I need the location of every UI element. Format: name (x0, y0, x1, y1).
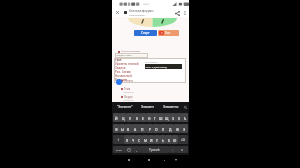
staticText: Форум колледжа (121, 50, 140, 53)
button[interactable]: П (139, 124, 146, 133)
staticText: С (138, 138, 141, 142)
button[interactable]: Emoji (125, 146, 133, 153)
button[interactable]: Ю (172, 135, 178, 144)
staticText: Ы (121, 127, 124, 131)
staticText: Форум (124, 95, 133, 99)
button[interactable]: Search (182, 102, 188, 112)
button[interactable]: С (136, 135, 142, 144)
staticText: П (141, 127, 144, 131)
button[interactable]: Э (181, 124, 188, 133)
staticText: Предмет мира (115, 54, 132, 57)
button[interactable]: Элементы (159, 102, 182, 112)
button[interactable]: К (134, 113, 140, 122)
staticText: У (129, 116, 132, 120)
button[interactable]: Тест: 5 дней назад (145, 64, 182, 69)
staticText: В (127, 127, 130, 131)
button[interactable]: Я (124, 135, 130, 144)
button[interactable]: More options (181, 9, 188, 16)
button[interactable]: Ж (174, 124, 181, 133)
staticText: О (155, 127, 158, 131)
button[interactable]: Backspace (178, 135, 188, 144)
staticText: Уран (115, 58, 122, 62)
button[interactable]: Enter (176, 146, 188, 153)
staticText: М (144, 138, 147, 142)
staticText: сообщений (123, 99, 134, 102)
staticText: Л (162, 127, 165, 131)
button[interactable]: Элемент (136, 102, 159, 112)
staticText: Т (156, 138, 158, 142)
button[interactable]: Тест (158, 30, 179, 36)
staticText: Е (142, 116, 144, 120)
button[interactable]: Т (154, 135, 160, 144)
button[interactable]: Предмет мира (115, 53, 148, 58)
button[interactable]: Home (146, 157, 152, 163)
button[interactable]: У (127, 113, 134, 122)
staticText: А (134, 127, 137, 131)
button[interactable]: А (132, 124, 139, 133)
staticText: ?123 (116, 148, 122, 151)
staticText: Тема (124, 87, 131, 91)
staticText: Ь (162, 138, 165, 142)
button[interactable]: Й (113, 113, 120, 122)
button[interactable]: Д (167, 124, 174, 133)
button[interactable]: Shift (113, 135, 124, 144)
button[interactable]: Share (173, 9, 181, 17)
staticText: ⌫ (181, 138, 186, 141)
button[interactable]: Symbols (113, 146, 125, 153)
staticText: Начальный (115, 74, 132, 78)
button[interactable]: Space (140, 146, 169, 153)
staticText: . (172, 148, 173, 152)
button[interactable]: Н (146, 113, 152, 122)
staticText: Уровень знаний (115, 62, 139, 66)
staticText: Ю (173, 138, 177, 142)
button[interactable]: Р (146, 124, 153, 133)
button[interactable]: Ф (113, 124, 119, 133)
staticText: З (172, 116, 174, 120)
staticText: Р (149, 127, 151, 131)
button[interactable]: З (170, 113, 176, 122)
button[interactable]: Л (160, 124, 167, 133)
staticText: Задача (115, 66, 126, 70)
staticText: ⇧ (117, 138, 120, 142)
button[interactable]: Close (114, 9, 121, 16)
button[interactable]: Ц (120, 113, 127, 122)
button[interactable]: "Элемент" (113, 102, 136, 112)
button[interactable]: Щ (164, 113, 170, 122)
button[interactable]: Switch keyboard (173, 157, 179, 163)
button[interactable]: Ь (160, 135, 166, 144)
staticText: Ш (159, 116, 163, 120)
staticText: Элементы (163, 105, 179, 109)
button[interactable]: Г (152, 113, 158, 122)
staticText: , (136, 148, 137, 152)
button[interactable]: И (148, 135, 154, 144)
staticText: Й (115, 116, 118, 120)
button[interactable]: М (142, 135, 148, 144)
button[interactable]: Старт (134, 30, 157, 36)
button[interactable]: Period (169, 146, 176, 153)
staticText: тест вариант (145, 61, 158, 64)
staticText: Рис. Схема (115, 70, 131, 74)
button[interactable]: О (153, 124, 160, 133)
staticText: Б (168, 138, 171, 142)
staticText: И (150, 138, 153, 142)
button[interactable]: Ч (130, 135, 136, 144)
button[interactable]: Ш (158, 113, 164, 122)
staticText: Старт (141, 31, 150, 35)
staticText: Г (154, 116, 156, 120)
staticText: "Элемент" (117, 105, 133, 109)
staticText: Ответы (124, 79, 134, 83)
staticText: Э (183, 127, 186, 131)
button[interactable]: Recents (126, 157, 132, 163)
button[interactable]: Х (176, 113, 182, 122)
button[interactable]: Е (140, 113, 146, 122)
staticText: Н (148, 116, 151, 120)
staticText: Ф (115, 127, 118, 131)
button[interactable]: Ъ (182, 113, 188, 122)
button[interactable]: В (125, 124, 132, 133)
button[interactable]: Comma (133, 146, 140, 153)
staticText: Тест: 5 дней назад (145, 65, 167, 68)
button[interactable]: Back (161, 157, 167, 163)
button[interactable]: Ы (119, 124, 125, 133)
button[interactable]: Б (166, 135, 172, 144)
staticText: Ц (122, 116, 125, 120)
